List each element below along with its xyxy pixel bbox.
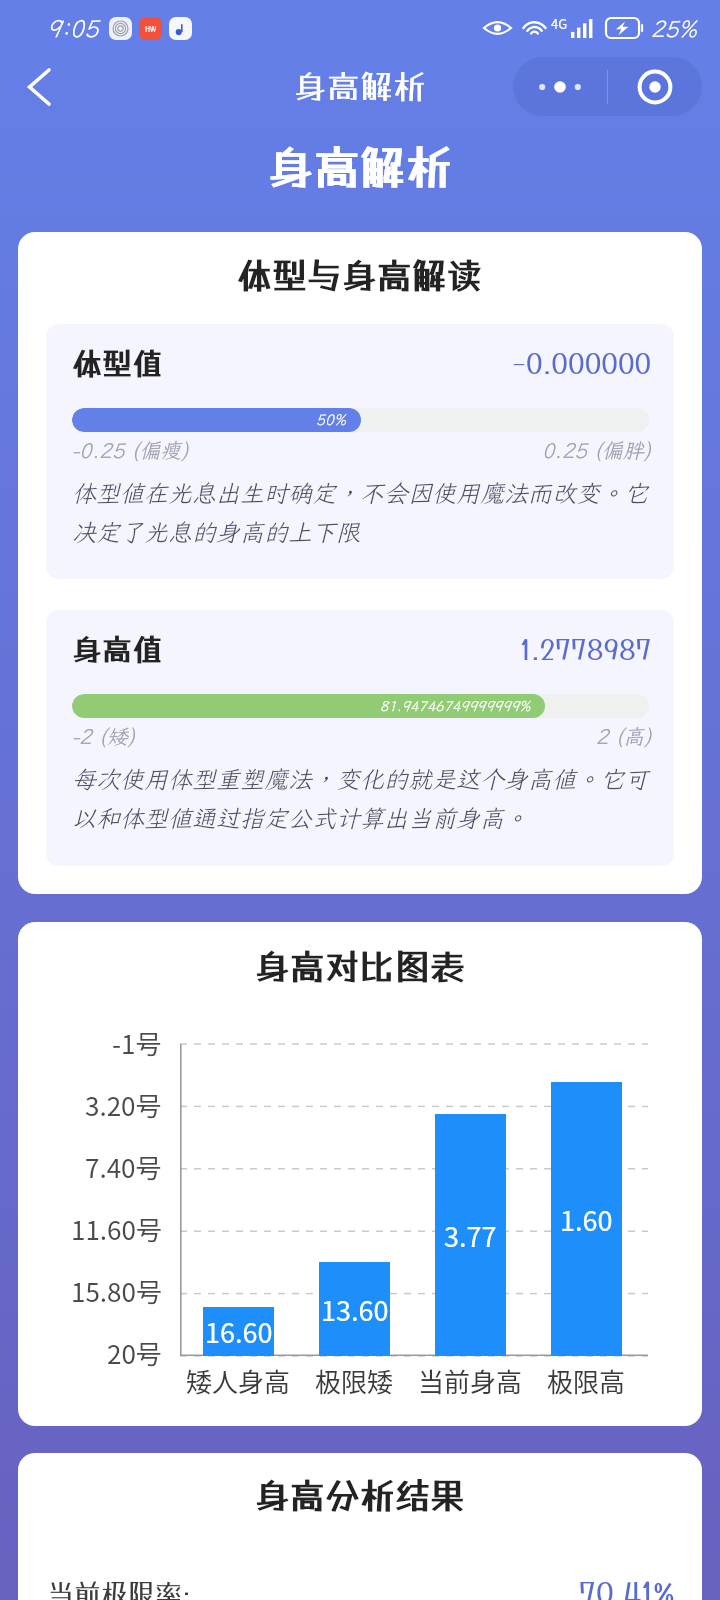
staticText: 3.20号 <box>85 1086 162 1122</box>
button[interactable]: Back <box>9 59 65 115</box>
staticText: HW <box>145 24 157 34</box>
staticText: -0.25 (偏瘦) <box>72 436 189 464</box>
staticText: 1.2778987 <box>520 633 652 666</box>
staticText: 50% <box>316 410 347 430</box>
staticText: 身高值 <box>72 632 162 667</box>
staticText: 每次使用体型重塑魔法，变化的就是这个身高值。它可 以和体型值通过指定公式计算出当… <box>72 763 648 834</box>
staticText: 70.41% <box>579 1575 675 1600</box>
staticText: 极限高 <box>547 1362 626 1400</box>
staticText: 身高对比图表 <box>255 946 466 987</box>
staticText: 当前极限率： <box>47 1577 209 1600</box>
button[interactable]: Close mini program <box>608 57 702 116</box>
staticText: 0.25 (偏胖) <box>542 436 652 464</box>
staticText: 体型值在光息出生时确定，不会因使用魔法而改变。它 决定了光息的身高的上下限 <box>72 477 648 548</box>
staticText: 81.94746749999999% <box>380 697 531 715</box>
staticText: -1号 <box>112 1024 162 1060</box>
staticText: 9:05 <box>47 12 99 44</box>
staticText: 16.60 <box>205 1312 273 1351</box>
staticText: 体型与身高解读 <box>237 255 483 296</box>
staticText: 矮人身高 <box>186 1362 291 1400</box>
staticText: 13.60 <box>321 1290 389 1329</box>
staticText: 4G <box>551 14 568 33</box>
staticText: 3.77 <box>444 1216 497 1255</box>
staticText: 身高解析 <box>294 67 426 106</box>
staticText: 7.40号 <box>85 1148 162 1184</box>
staticText: 11.60号 <box>71 1210 162 1246</box>
staticText: 极限矮 <box>315 1362 394 1400</box>
staticText: 身高解析 <box>268 140 452 194</box>
staticText: -2 (矮) <box>72 722 135 750</box>
staticText: 15.80号 <box>71 1272 162 1308</box>
staticText: 身高分析结果 <box>255 1475 466 1516</box>
staticText: 体型值 <box>72 346 162 381</box>
button[interactable]: More options <box>513 57 607 116</box>
staticText: 1.60 <box>560 1200 613 1239</box>
staticText: 25% <box>651 13 698 43</box>
staticText: 2 (高) <box>596 722 652 750</box>
staticText: 当前身高 <box>418 1362 523 1400</box>
staticText: -0.000000 <box>512 347 652 380</box>
staticText: 20号 <box>107 1334 162 1370</box>
